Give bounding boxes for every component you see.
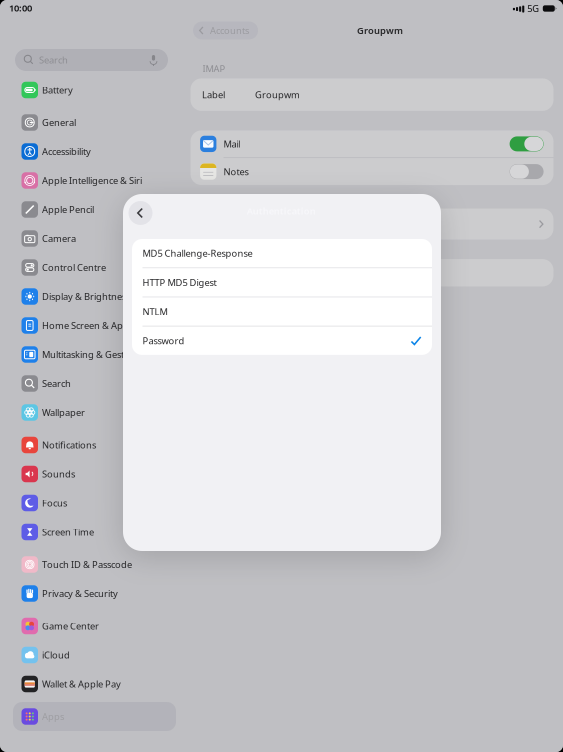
- button[interactable]: Privacy & Security: [13, 579, 176, 608]
- staticText: Home Screen & Apps: [42, 319, 133, 332]
- staticText: Wallpaper: [42, 406, 85, 419]
- button[interactable]: iCloud: [13, 640, 176, 669]
- button[interactable]: Focus: [13, 488, 176, 517]
- staticText: Mail: [223, 138, 240, 150]
- button[interactable]: Wallet & Apple Pay: [13, 669, 176, 698]
- button[interactable]: MD5 Challenge-Response: [132, 239, 432, 267]
- staticText: Accessibility: [42, 145, 91, 158]
- staticText: Search: [39, 54, 68, 66]
- button[interactable]: Game Center: [13, 611, 176, 640]
- button[interactable]: Display & Brightness: [13, 282, 176, 311]
- button[interactable]: Accounts: [193, 21, 258, 39]
- staticText: Privacy & Security: [42, 587, 118, 600]
- staticText: NTLM: [142, 305, 167, 318]
- staticText: Search: [42, 377, 71, 390]
- button[interactable]: Apple Intelligence & Siri: [13, 166, 176, 195]
- button[interactable]: Search: [13, 369, 176, 398]
- staticText: Groupwm: [255, 88, 300, 101]
- staticText: Accounts: [210, 24, 249, 37]
- staticText: Sounds: [42, 468, 75, 480]
- staticText: Camera: [42, 232, 76, 245]
- button[interactable]: HTTP MD5 Digest: [132, 268, 432, 296]
- button[interactable]: Wallpaper: [13, 398, 176, 427]
- staticText: Password: [142, 335, 184, 347]
- button[interactable]: Notes: [190, 158, 553, 185]
- button[interactable]: NTLM: [132, 297, 432, 326]
- staticText: Notifications: [42, 439, 96, 451]
- staticText: Apple Intelligence & Siri: [42, 174, 142, 187]
- staticText: Display & Brightness: [42, 290, 130, 303]
- staticText: Game Center: [42, 620, 99, 632]
- staticText: General: [42, 116, 76, 129]
- staticText: iCloud: [42, 649, 70, 661]
- button[interactable]: Control Centre: [13, 253, 176, 282]
- button[interactable]: Password: [132, 327, 432, 355]
- button[interactable]: Apple Pencil: [13, 195, 176, 224]
- button[interactable]: Touch ID & Passcode: [13, 550, 176, 579]
- staticText: Control Centre: [42, 261, 106, 274]
- staticText: Focus: [42, 497, 67, 509]
- button[interactable]: Sounds: [13, 459, 176, 488]
- button[interactable]: Back: [128, 201, 152, 225]
- staticText: Label: [202, 88, 225, 101]
- staticText: Multitasking & Gestures: [42, 348, 143, 361]
- staticText: 5G: [527, 2, 539, 15]
- button[interactable]: Apps: [13, 702, 176, 731]
- button[interactable]: Multitasking & Gestures: [13, 340, 176, 369]
- staticText: Apple Pencil: [42, 203, 94, 216]
- staticText: HTTP MD5 Digest: [142, 276, 216, 289]
- button[interactable]: Accessibility: [13, 137, 176, 166]
- staticText: Wallet & Apple Pay: [42, 678, 121, 690]
- button[interactable]: Notifications: [13, 430, 176, 459]
- staticText: Screen Time: [42, 526, 94, 538]
- staticText: Battery: [42, 84, 73, 96]
- button[interactable]: Screen Time: [13, 517, 176, 546]
- staticText: MD5 Challenge-Response: [142, 247, 252, 259]
- button[interactable]: Home Screen & Apps: [13, 311, 176, 340]
- staticText: Apps: [42, 710, 64, 723]
- staticText: IMAP: [202, 62, 225, 75]
- button[interactable]: Battery: [13, 75, 176, 104]
- staticText: 10:00: [9, 2, 32, 14]
- button[interactable]: General: [13, 108, 176, 137]
- staticText: Groupwm: [357, 24, 403, 37]
- button[interactable]: Mail: [190, 130, 553, 157]
- button[interactable]: Camera: [13, 224, 176, 253]
- staticText: Touch ID & Passcode: [42, 558, 132, 571]
- staticText: Notes: [223, 165, 248, 178]
